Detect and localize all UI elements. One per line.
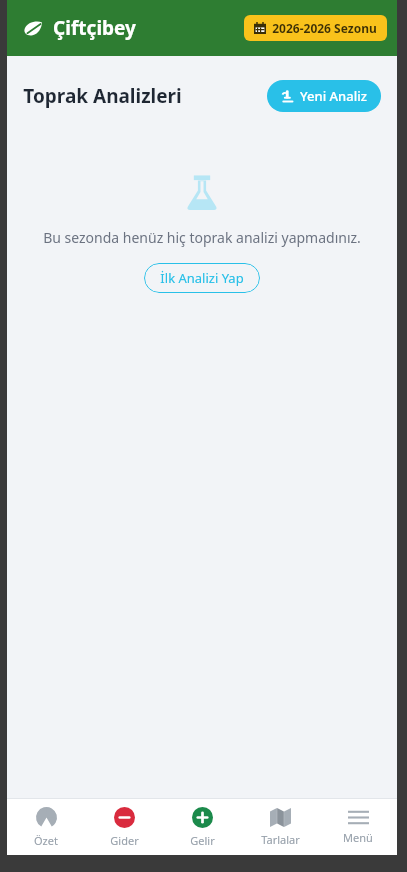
staticText: Tarlalar	[261, 832, 300, 847]
staticText: Çiftçibey	[53, 15, 136, 41]
staticText: Menü	[343, 830, 373, 845]
other: Gelir	[192, 807, 213, 828]
button[interactable]: Tarlalar	[241, 799, 319, 855]
button[interactable]: Menü	[319, 799, 397, 855]
button[interactable]: Gider	[85, 799, 163, 855]
staticText: Bu sezonda henüz hiç toprak analizi yapm…	[43, 228, 361, 247]
other: Gider	[114, 807, 135, 828]
button[interactable]: Yeni Analiz	[267, 80, 381, 112]
other: Menü	[348, 810, 369, 825]
other: Tarlalar	[270, 808, 291, 827]
button[interactable]: İlk Analizi Yap	[144, 263, 260, 293]
staticText: Gider	[110, 833, 139, 848]
button[interactable]: 2026-2026 Sezonu	[244, 15, 387, 41]
staticText: Toprak Analizleri	[23, 83, 182, 109]
button[interactable]: Gelir	[163, 799, 241, 855]
staticText: İlk Analizi Yap	[160, 269, 244, 287]
other: Özet	[36, 807, 57, 828]
button[interactable]: Özet	[7, 799, 85, 855]
staticText: 2026-2026 Sezonu	[272, 20, 377, 36]
staticText: Özet	[34, 833, 58, 848]
staticText: Yeni Analiz	[300, 87, 367, 105]
staticText: Gelir	[190, 833, 215, 848]
